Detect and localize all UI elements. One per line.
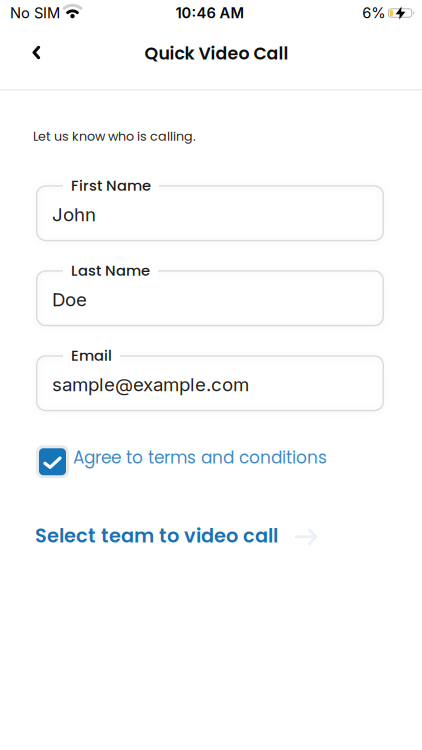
button[interactable]: Last Name, Doe xyxy=(36,260,384,326)
staticText: Email xyxy=(71,345,112,366)
staticText: 6% xyxy=(362,4,385,22)
staticText: Let us know who is calling. xyxy=(33,127,196,145)
staticText: Select team to video call xyxy=(35,522,278,549)
button[interactable]: Agree to terms and conditions xyxy=(0,411,327,478)
staticText: Quick Video Call xyxy=(144,41,288,66)
staticText: John xyxy=(52,203,96,226)
button[interactable]: First Name, John xyxy=(36,175,384,241)
staticText: No SIM xyxy=(10,4,60,22)
staticText: Last Name xyxy=(71,260,150,281)
staticText: 10:46 AM xyxy=(175,4,244,22)
staticText: Agree to terms and conditions xyxy=(73,446,327,469)
button[interactable]: Email, sample@example.com xyxy=(36,345,384,411)
staticText: sample@example.com xyxy=(52,373,249,396)
button[interactable]: Select team to video call xyxy=(0,478,317,549)
staticText: First Name xyxy=(71,175,151,196)
staticText: Doe xyxy=(52,288,87,311)
button[interactable]: Back xyxy=(0,30,57,77)
